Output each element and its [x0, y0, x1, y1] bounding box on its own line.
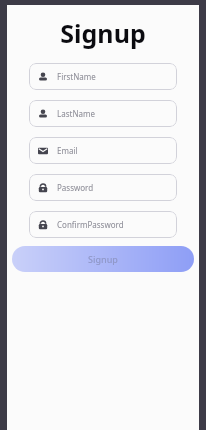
button[interactable]: Signup: [12, 246, 194, 272]
staticText: FirstName: [57, 71, 96, 82]
staticText: Signup: [7, 16, 199, 50]
button[interactable]: ConfirmPassword: [29, 211, 177, 238]
button[interactable]: LastName: [29, 100, 177, 127]
button[interactable]: Email: [29, 137, 177, 164]
staticText: ConfirmPassword: [57, 219, 124, 230]
button[interactable]: FirstName: [29, 63, 177, 90]
staticText: LastName: [57, 108, 95, 119]
staticText: Signup: [88, 253, 118, 265]
staticText: Email: [57, 145, 78, 156]
button[interactable]: Password: [29, 174, 177, 201]
staticText: Password: [57, 182, 94, 193]
